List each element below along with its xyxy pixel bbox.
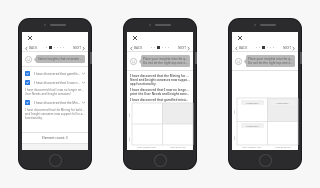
- staticText: What students care: [137, 146, 157, 149]
- button[interactable]: Place your insights into the quadrants.: [246, 55, 295, 67]
- staticText: I have discovered that the Mining f...: [34, 101, 81, 105]
- button[interactable]: BACK: [25, 46, 38, 50]
- button[interactable]: Close: [131, 34, 138, 41]
- staticText: I have disc...: [246, 101, 260, 104]
- button[interactable]: [162, 124, 193, 145]
- staticText: functionality.: [25, 116, 43, 120]
- button[interactable]: I have disc...: [237, 121, 267, 145]
- staticText: I have discovered that the Mining for bo…: [25, 108, 85, 112]
- button[interactable]: I have discovered that the Mining f...: [22, 98, 88, 107]
- button[interactable]: Element count: 3: [22, 133, 88, 143]
- button[interactable]: [267, 121, 298, 145]
- staticText: Many insights or unexpected: [128, 112, 131, 117]
- button[interactable]: I have discovered that gamified mo...: [22, 69, 88, 78]
- staticText: I have discovered that gamified missions…: [130, 98, 190, 102]
- button[interactable]: NEXT: [73, 46, 85, 50]
- staticText: Place your insights into the quadrants.: [248, 57, 293, 61]
- staticText: Smaller opportunity: [233, 135, 236, 140]
- staticText: I have discovered that gamified mo...: [34, 72, 81, 76]
- staticText: What we do not: [170, 146, 186, 149]
- button[interactable]: Close: [236, 34, 243, 41]
- staticText: Do not let the right top one empty!: [248, 61, 293, 65]
- staticText: BACK: [29, 46, 38, 50]
- button[interactable]: BACK: [130, 46, 143, 50]
- button[interactable]: [132, 103, 162, 124]
- staticText: Place your insights into the quadrants.: [143, 57, 188, 61]
- button[interactable]: [132, 124, 162, 145]
- staticText: I have discovered that I now no longer n…: [25, 88, 85, 92]
- staticText: print the User Needs and Insight canvase…: [130, 92, 190, 96]
- button[interactable]: Select insights that resonate in you: [36, 55, 85, 63]
- staticText: What students care: [242, 146, 262, 149]
- staticText: app functionality.: [130, 82, 157, 86]
- staticText: BACK: [134, 46, 143, 50]
- button[interactable]: I have disc...: [267, 98, 298, 121]
- staticText: and Insight canvases now support full in…: [25, 112, 85, 116]
- staticText: Need and Insight canvases now support fu…: [130, 78, 190, 82]
- staticText: I have disc...: [276, 101, 290, 104]
- button[interactable]: Close: [26, 34, 33, 41]
- staticText: Smaller opportunity: [128, 136, 131, 141]
- staticText: NEXT: [283, 46, 291, 50]
- staticText: User Needs and Insight canvases!: [25, 92, 71, 96]
- staticText: I have discovered that I now no longer n…: [130, 88, 190, 92]
- staticText: NEXT: [73, 46, 81, 50]
- staticText: I have discovered that the Mining for bo…: [130, 74, 190, 78]
- button[interactable]: I have discovered that I now no lon...: [22, 78, 88, 87]
- button[interactable]: I have disc...: [237, 98, 267, 121]
- staticText: I have discovered that I now no lon...: [34, 81, 81, 85]
- staticText: Do not let the right top one empty!: [143, 61, 188, 65]
- staticText: What we do not: [275, 146, 291, 149]
- staticText: Select insights that resonate in you: [38, 57, 83, 61]
- staticText: Element count: 3: [42, 136, 68, 140]
- button[interactable]: Place your insights into the quadrants.: [141, 55, 190, 67]
- staticText: Many insights or unexpected: [233, 109, 236, 114]
- staticText: NEXT: [178, 46, 186, 50]
- button[interactable]: NEXT: [283, 46, 295, 50]
- staticText: I have disc...: [246, 124, 260, 127]
- button[interactable]: [162, 103, 193, 124]
- button[interactable]: NEXT: [178, 46, 190, 50]
- button[interactable]: BACK: [235, 46, 248, 50]
- staticText: BACK: [239, 46, 248, 50]
